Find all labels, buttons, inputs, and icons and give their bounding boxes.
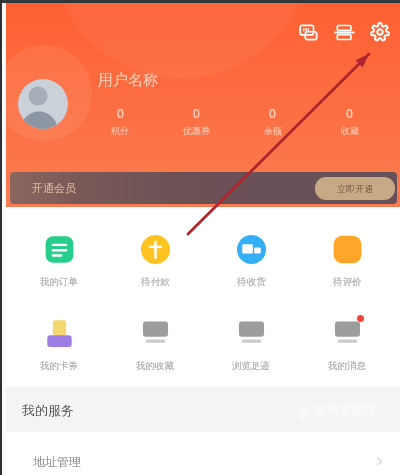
staticText: 我的消息 [328,360,366,372]
button[interactable]: 0 [311,105,388,136]
button[interactable]: Messages [290,14,326,50]
button[interactable]: 0 [158,105,234,136]
button[interactable]: 待收货 [203,231,299,288]
staticText: 0 [193,105,200,121]
staticText: 收藏 [341,125,359,136]
button[interactable]: Scan [326,14,362,50]
button[interactable] [18,79,68,129]
staticText: 优惠券 [183,125,210,136]
staticText: 待付款 [141,276,170,288]
button[interactable]: 浏览足迹 [203,315,299,372]
staticText: 用户名称 [98,71,158,90]
staticText: 待评价 [333,276,362,288]
button[interactable]: 待评价 [299,231,395,288]
staticText: 0 [346,105,353,121]
staticText: 积分 [111,125,129,136]
button[interactable]: 我的收藏 [107,315,203,372]
staticText: 我的订单 [40,276,78,288]
button[interactable]: 0 [234,105,311,136]
button[interactable]: 开通会员 [10,172,397,204]
button[interactable]: 我的卡券 [11,315,107,372]
staticText: 开通会员 [32,181,76,195]
staticText: 待收货 [237,276,266,288]
button[interactable]: Settings [362,14,398,50]
staticText: 余额 [264,125,282,136]
button[interactable]: 0 [82,105,158,136]
staticText: 我的收藏 [136,360,174,372]
staticText: 浏览足迹 [232,360,270,372]
button[interactable]: 我的订单 [11,231,107,288]
staticText: 立即开通 [337,183,373,194]
staticText: 0 [117,105,124,121]
button[interactable]: 立即开通 [315,177,395,200]
button[interactable]: 我的消息 [299,315,395,372]
button[interactable]: 地址管理 [6,432,400,475]
button[interactable]: 待付款 [107,231,203,288]
staticText: 0 [269,105,276,121]
staticText: 我的卡券 [40,360,78,372]
staticText: 地址管理 [33,454,81,469]
staticText: 我的服务 [22,402,74,418]
